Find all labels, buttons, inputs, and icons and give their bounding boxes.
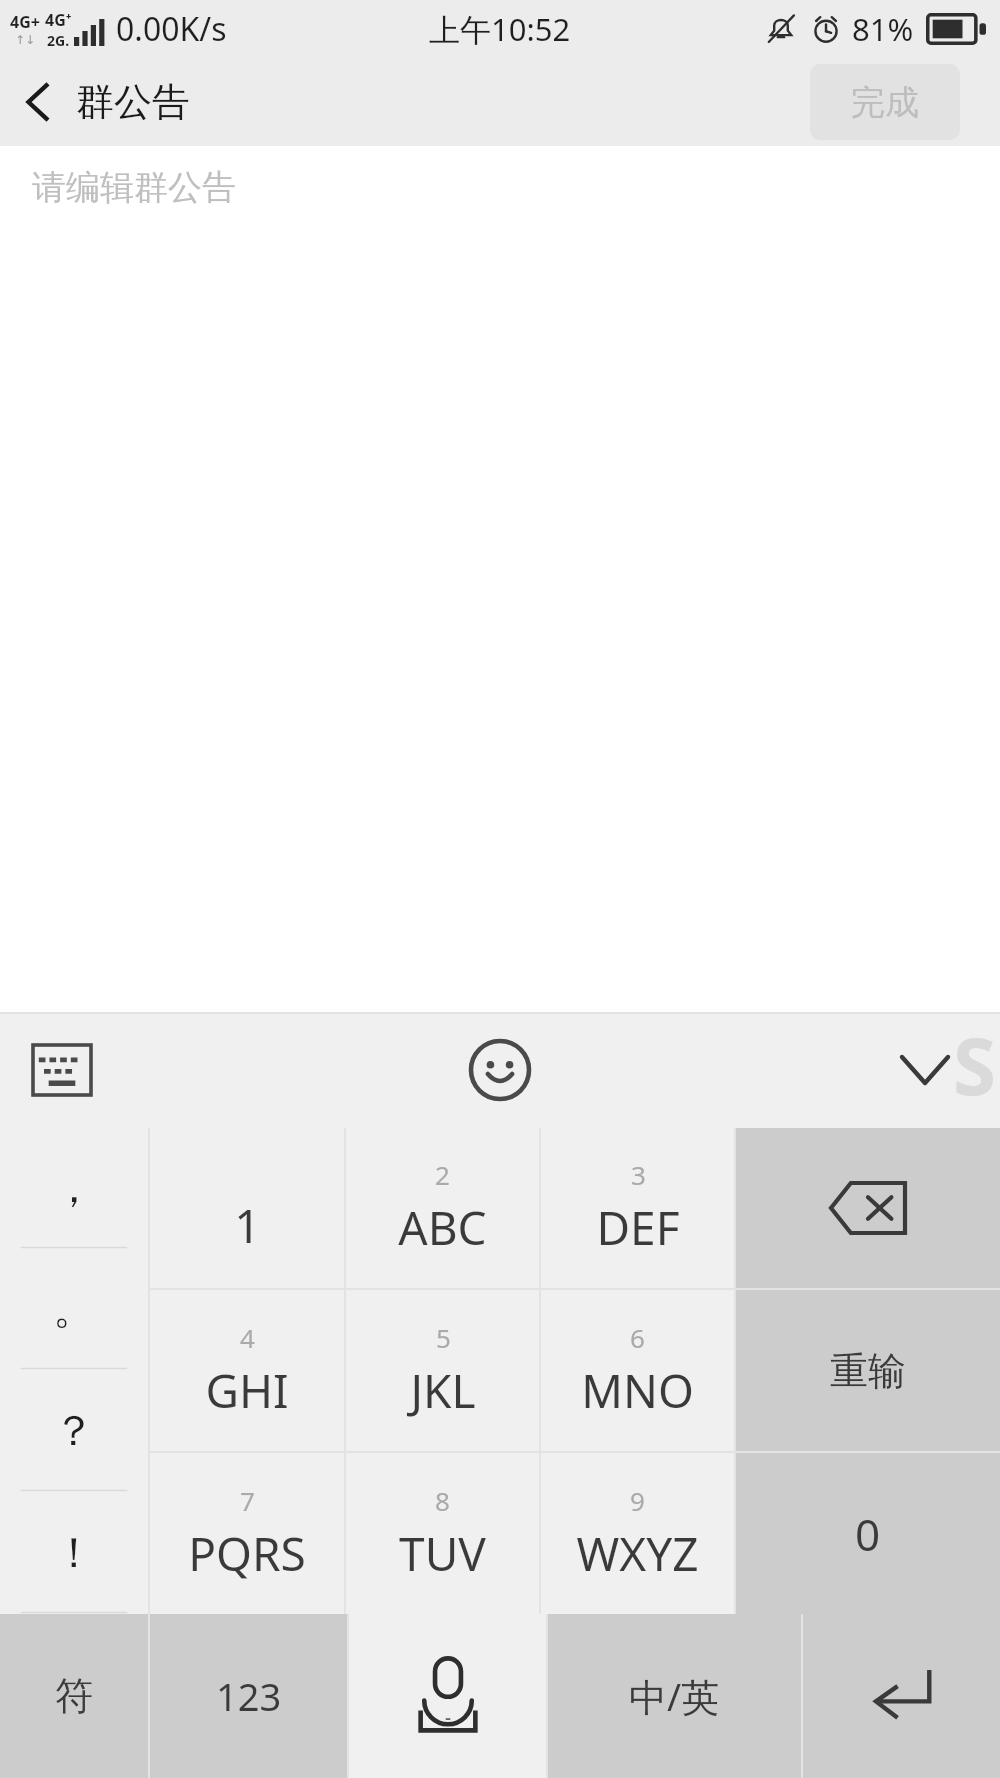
staticText: GHI xyxy=(205,1359,289,1422)
button[interactable]: ？ xyxy=(0,1370,148,1492)
staticText: 1 xyxy=(234,1194,261,1257)
button[interactable]: Emoji xyxy=(450,1020,550,1120)
staticText: 7 xyxy=(240,1483,255,1518)
button[interactable]: 1 xyxy=(150,1128,344,1288)
staticText: 符 xyxy=(55,1672,93,1720)
staticText: MNO xyxy=(581,1359,694,1422)
button[interactable]: 符 xyxy=(0,1614,148,1778)
staticText: ABC xyxy=(398,1196,487,1259)
button[interactable]: Enter xyxy=(803,1614,1000,1778)
staticText: 8 xyxy=(435,1483,450,1518)
button[interactable]: 重输 xyxy=(736,1290,1000,1451)
staticText: 3 xyxy=(631,1157,646,1192)
button[interactable]: 6 xyxy=(541,1290,734,1451)
button[interactable]: 。 xyxy=(0,1249,148,1370)
other: Back xyxy=(24,79,52,125)
staticText: 4 xyxy=(240,1320,255,1355)
staticText: 2G. xyxy=(47,31,70,50)
button[interactable]: 完成 xyxy=(810,64,960,140)
button[interactable]: ， xyxy=(0,1128,148,1249)
staticText: 请编辑群公告 xyxy=(32,166,236,209)
staticText: 0 xyxy=(855,1504,881,1564)
staticText: PQRS xyxy=(188,1522,306,1585)
button[interactable]: Voice input xyxy=(349,1614,546,1778)
staticText: S xyxy=(953,1012,996,1118)
staticText: JKL xyxy=(410,1359,476,1422)
button[interactable]: 3 xyxy=(541,1128,734,1288)
button[interactable]: Back xyxy=(0,70,210,134)
staticText: 81% xyxy=(852,8,914,50)
button[interactable]: 8 xyxy=(346,1453,539,1614)
staticText: 9 xyxy=(630,1483,645,1518)
staticText: 4G+ xyxy=(10,11,40,33)
staticText: ！ xyxy=(53,1527,95,1580)
button[interactable]: Backspace xyxy=(736,1128,1000,1288)
staticText: 上午10:52 xyxy=(429,8,571,50)
button[interactable]: 4 xyxy=(150,1290,344,1451)
button[interactable]: 9 xyxy=(541,1453,734,1614)
button[interactable]: Switch keyboard xyxy=(20,1028,104,1112)
staticText: WXYZ xyxy=(576,1522,699,1585)
staticText: TUV xyxy=(399,1522,486,1585)
staticText: DEF xyxy=(596,1196,680,1259)
staticText: 2 xyxy=(435,1157,450,1192)
staticText: ？ xyxy=(53,1405,95,1458)
staticText: 群公告 xyxy=(76,78,190,126)
button[interactable]: 123 xyxy=(150,1614,347,1778)
staticText: 4G⁺ xyxy=(45,9,72,31)
staticText: 。 xyxy=(53,1283,95,1336)
button[interactable]: Hide keyboard xyxy=(878,1023,972,1117)
staticText: 5 xyxy=(436,1320,451,1355)
staticText: 0.00K/s xyxy=(116,7,227,51)
staticText: 6 xyxy=(630,1320,645,1355)
staticText: 中/英 xyxy=(629,1670,720,1722)
staticText: 123 xyxy=(216,1670,282,1722)
button[interactable]: ！ xyxy=(0,1492,148,1614)
staticText: ， xyxy=(53,1162,95,1215)
staticText: 重输 xyxy=(830,1347,906,1395)
button[interactable]: 7 xyxy=(150,1453,344,1614)
button[interactable]: 0 xyxy=(736,1453,1000,1614)
staticText: ↑↓ xyxy=(15,33,36,47)
button[interactable]: 5 xyxy=(346,1290,539,1451)
staticText: 完成 xyxy=(851,81,919,124)
button[interactable]: 中/英 xyxy=(548,1614,801,1778)
button[interactable]: 2 xyxy=(346,1128,539,1288)
